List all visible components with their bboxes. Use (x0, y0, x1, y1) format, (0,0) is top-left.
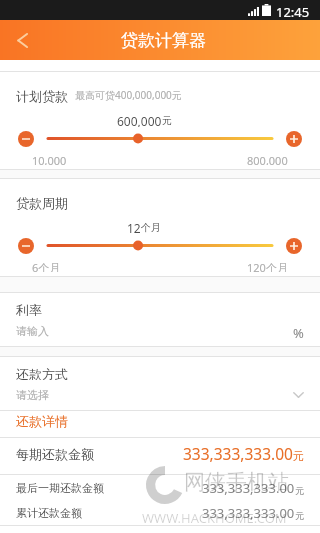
button[interactable]: 还款方式 (0, 356, 320, 410)
button[interactable]: 每期还款金额 (16, 437, 304, 470)
staticText: 最后一期还款金额 (16, 481, 104, 495)
staticText: 利率 (16, 302, 42, 316)
staticText: 请输入 (16, 324, 49, 338)
staticText: 600,000 (117, 113, 162, 127)
button[interactable]: 最后一期还款金额 (16, 474, 304, 501)
staticText: 每期还款金额 (16, 446, 94, 462)
button[interactable]: Back (0, 20, 44, 60)
staticText: % (293, 324, 304, 338)
staticText: 元 (293, 449, 304, 463)
button[interactable]: Decrease (18, 131, 34, 147)
staticText: 最高可贷400,000,000元 (75, 88, 182, 102)
staticText: 贷款周期 (16, 195, 68, 210)
staticText: 元 (295, 485, 304, 496)
staticText: 累计还款金额 (16, 506, 82, 520)
staticText: 还款方式 (16, 366, 68, 380)
staticText: 元 (295, 510, 304, 521)
button[interactable]: Decrease (18, 238, 34, 254)
staticText: 计划贷款 (16, 88, 68, 103)
staticText: WWW.HACKHOME.COM (142, 509, 287, 527)
staticText: 120个月 (247, 260, 288, 272)
staticText: 12 (127, 220, 141, 234)
staticText: 6个月 (32, 260, 61, 272)
button[interactable]: 累计还款金额 (16, 501, 304, 525)
staticText: 个月 (141, 221, 161, 234)
staticText: 元 (162, 114, 172, 127)
staticText: 还款详情 (16, 413, 68, 429)
staticText: 333,333,333.00 (202, 479, 295, 497)
button[interactable]: 还款详情 (0, 409, 320, 435)
staticText: 贷款计算器 (121, 30, 206, 51)
button[interactable]: 利率 (0, 292, 320, 346)
staticText: 网侠手机站 (184, 469, 289, 495)
staticText: 333,333,333.00 (202, 504, 295, 522)
staticText: 请选择 (16, 388, 49, 402)
staticText: 333,333,333.00 (183, 443, 293, 464)
staticText: 10,000 (32, 153, 67, 165)
staticText: 800,000 (247, 153, 288, 165)
staticText: 12:45 (276, 3, 310, 21)
button[interactable]: Increase (286, 238, 302, 254)
button[interactable]: Increase (286, 131, 302, 147)
